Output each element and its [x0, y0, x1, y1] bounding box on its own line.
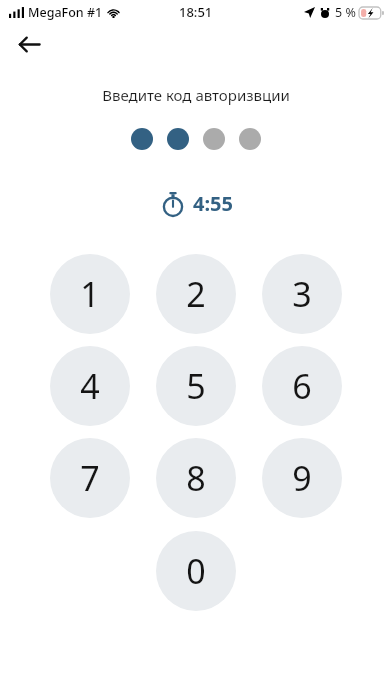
button[interactable]: 5: [156, 346, 236, 426]
button[interactable]: 9: [262, 438, 342, 518]
button[interactable]: Back: [9, 24, 49, 64]
staticText: 3: [292, 271, 312, 317]
staticText: 6: [292, 363, 312, 409]
staticText: 4:55: [193, 190, 233, 217]
button[interactable]: 4: [50, 346, 130, 426]
staticText: 9: [292, 455, 312, 501]
staticText: 2: [186, 271, 206, 317]
staticText: MegaFon #1: [28, 4, 103, 21]
staticText: 1: [80, 271, 100, 317]
staticText: 4: [80, 363, 100, 409]
staticText: 5 %: [335, 4, 356, 21]
staticText: 7: [80, 455, 100, 501]
staticText: 8: [186, 455, 206, 501]
button[interactable]: 2: [156, 254, 236, 334]
button[interactable]: 1: [50, 254, 130, 334]
staticText: Введите код авторизвции: [0, 85, 392, 105]
staticText: 18:51: [179, 3, 213, 21]
button[interactable]: 7: [50, 438, 130, 518]
button[interactable]: 0: [156, 531, 236, 611]
button[interactable]: 6: [262, 346, 342, 426]
button[interactable]: 8: [156, 438, 236, 518]
staticText: 0: [186, 548, 206, 594]
staticText: 5: [186, 363, 206, 409]
button[interactable]: 3: [262, 254, 342, 334]
